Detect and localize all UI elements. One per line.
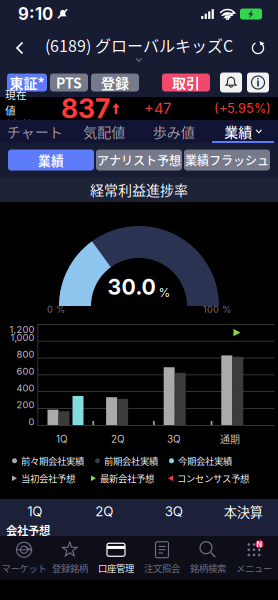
staticText: 200 (16, 399, 34, 411)
button[interactable]: アラート (220, 72, 242, 92)
button[interactable]: 注文照会 (139, 536, 185, 580)
staticText: N (256, 540, 262, 549)
button[interactable]: 業績 (208, 120, 278, 143)
button[interactable]: 気配値 (69, 120, 139, 143)
staticText: 登録銘柄 (52, 561, 88, 575)
staticText: 3Q (167, 433, 181, 445)
staticText: +47 (144, 100, 171, 117)
button[interactable]: 情報 (247, 72, 269, 92)
staticText: 1,200 (9, 324, 34, 335)
staticText: 今期会社実績 (178, 454, 232, 467)
button[interactable]: マーケット (1, 536, 47, 580)
staticText: 当初会社予想 (21, 471, 75, 485)
staticText: 837 (61, 92, 110, 125)
staticText: 最新会社予想 (100, 471, 154, 485)
staticText: 1,000 (10, 332, 34, 343)
staticText: アナリスト予想 (97, 151, 181, 169)
button[interactable]: 1Q (0, 499, 69, 524)
staticText: チャート (7, 121, 63, 142)
button[interactable]: アナリスト予想 (96, 149, 182, 170)
staticText: 1Q (27, 503, 42, 519)
button[interactable]: 口座管理 (93, 536, 139, 580)
button[interactable]: 3Q (139, 499, 208, 524)
staticText: 本決算 (224, 502, 263, 521)
button[interactable]: 銘柄検索 (185, 536, 231, 580)
staticText: 600 (16, 366, 34, 377)
staticText: 気配値 (83, 121, 125, 142)
staticText: (6189) グローバルキッズC (45, 33, 233, 57)
staticText: 100 % (203, 304, 231, 315)
staticText: 業績フラッシュ (185, 151, 269, 169)
staticText: (+5.95%) (214, 101, 271, 116)
staticText: 2Q (95, 503, 113, 519)
staticText: 0 (28, 416, 34, 427)
button[interactable]: 登録銘柄 (47, 536, 93, 580)
staticText: 取引 (172, 72, 200, 93)
staticText: 経常利益進捗率 (90, 179, 188, 200)
staticText: 1Q (56, 433, 68, 445)
staticText: 30.0 (107, 274, 155, 300)
staticText: 会社予想 (6, 522, 50, 538)
staticText: PTS (56, 72, 82, 93)
staticText: 通期 (220, 432, 240, 446)
button[interactable]: チャート (0, 120, 69, 143)
staticText: 0 % (47, 304, 65, 315)
staticText: 前々期会社実績 (21, 454, 84, 467)
staticText: 歩み値 (153, 121, 195, 142)
staticText: 登録 (101, 72, 129, 93)
staticText: コンセンサス予想 (177, 471, 249, 485)
staticText: メニュー (236, 561, 272, 575)
button[interactable]: 東証* (7, 73, 47, 91)
staticText: 口座管理 (98, 561, 134, 575)
staticText: i (256, 76, 259, 89)
staticText: 2Q (111, 433, 125, 445)
staticText: 3Q (165, 503, 183, 519)
staticText: 注文照会 (144, 561, 180, 575)
staticText: 400 (16, 382, 34, 394)
staticText: 銘柄検索 (190, 561, 226, 575)
staticText: 800 (16, 349, 34, 360)
staticText: 09:10 (5, 117, 33, 130)
staticText: マーケット (1, 561, 46, 575)
button[interactable]: PTS (50, 73, 88, 91)
button[interactable]: 戻る (5, 35, 35, 61)
staticText: % (158, 285, 170, 300)
button[interactable]: 更新 (243, 35, 273, 61)
staticText: 9:10 (18, 4, 53, 24)
button[interactable]: 2Q (69, 499, 139, 524)
button[interactable]: 業績フラッシュ (184, 149, 270, 170)
button[interactable]: 取引 (162, 73, 210, 91)
staticText: 業績 (38, 151, 64, 169)
staticText: 前期会社実績 (104, 454, 158, 467)
button[interactable]: 業績 (8, 149, 94, 170)
button[interactable]: 本決算 (208, 499, 278, 524)
button[interactable]: 歩み値 (139, 120, 208, 143)
button[interactable]: 登録 (91, 73, 139, 91)
staticText: 現在値 (5, 87, 27, 117)
staticText: 東証* (9, 72, 44, 93)
button[interactable]: N (231, 536, 277, 580)
staticText: 業績 (224, 121, 252, 142)
